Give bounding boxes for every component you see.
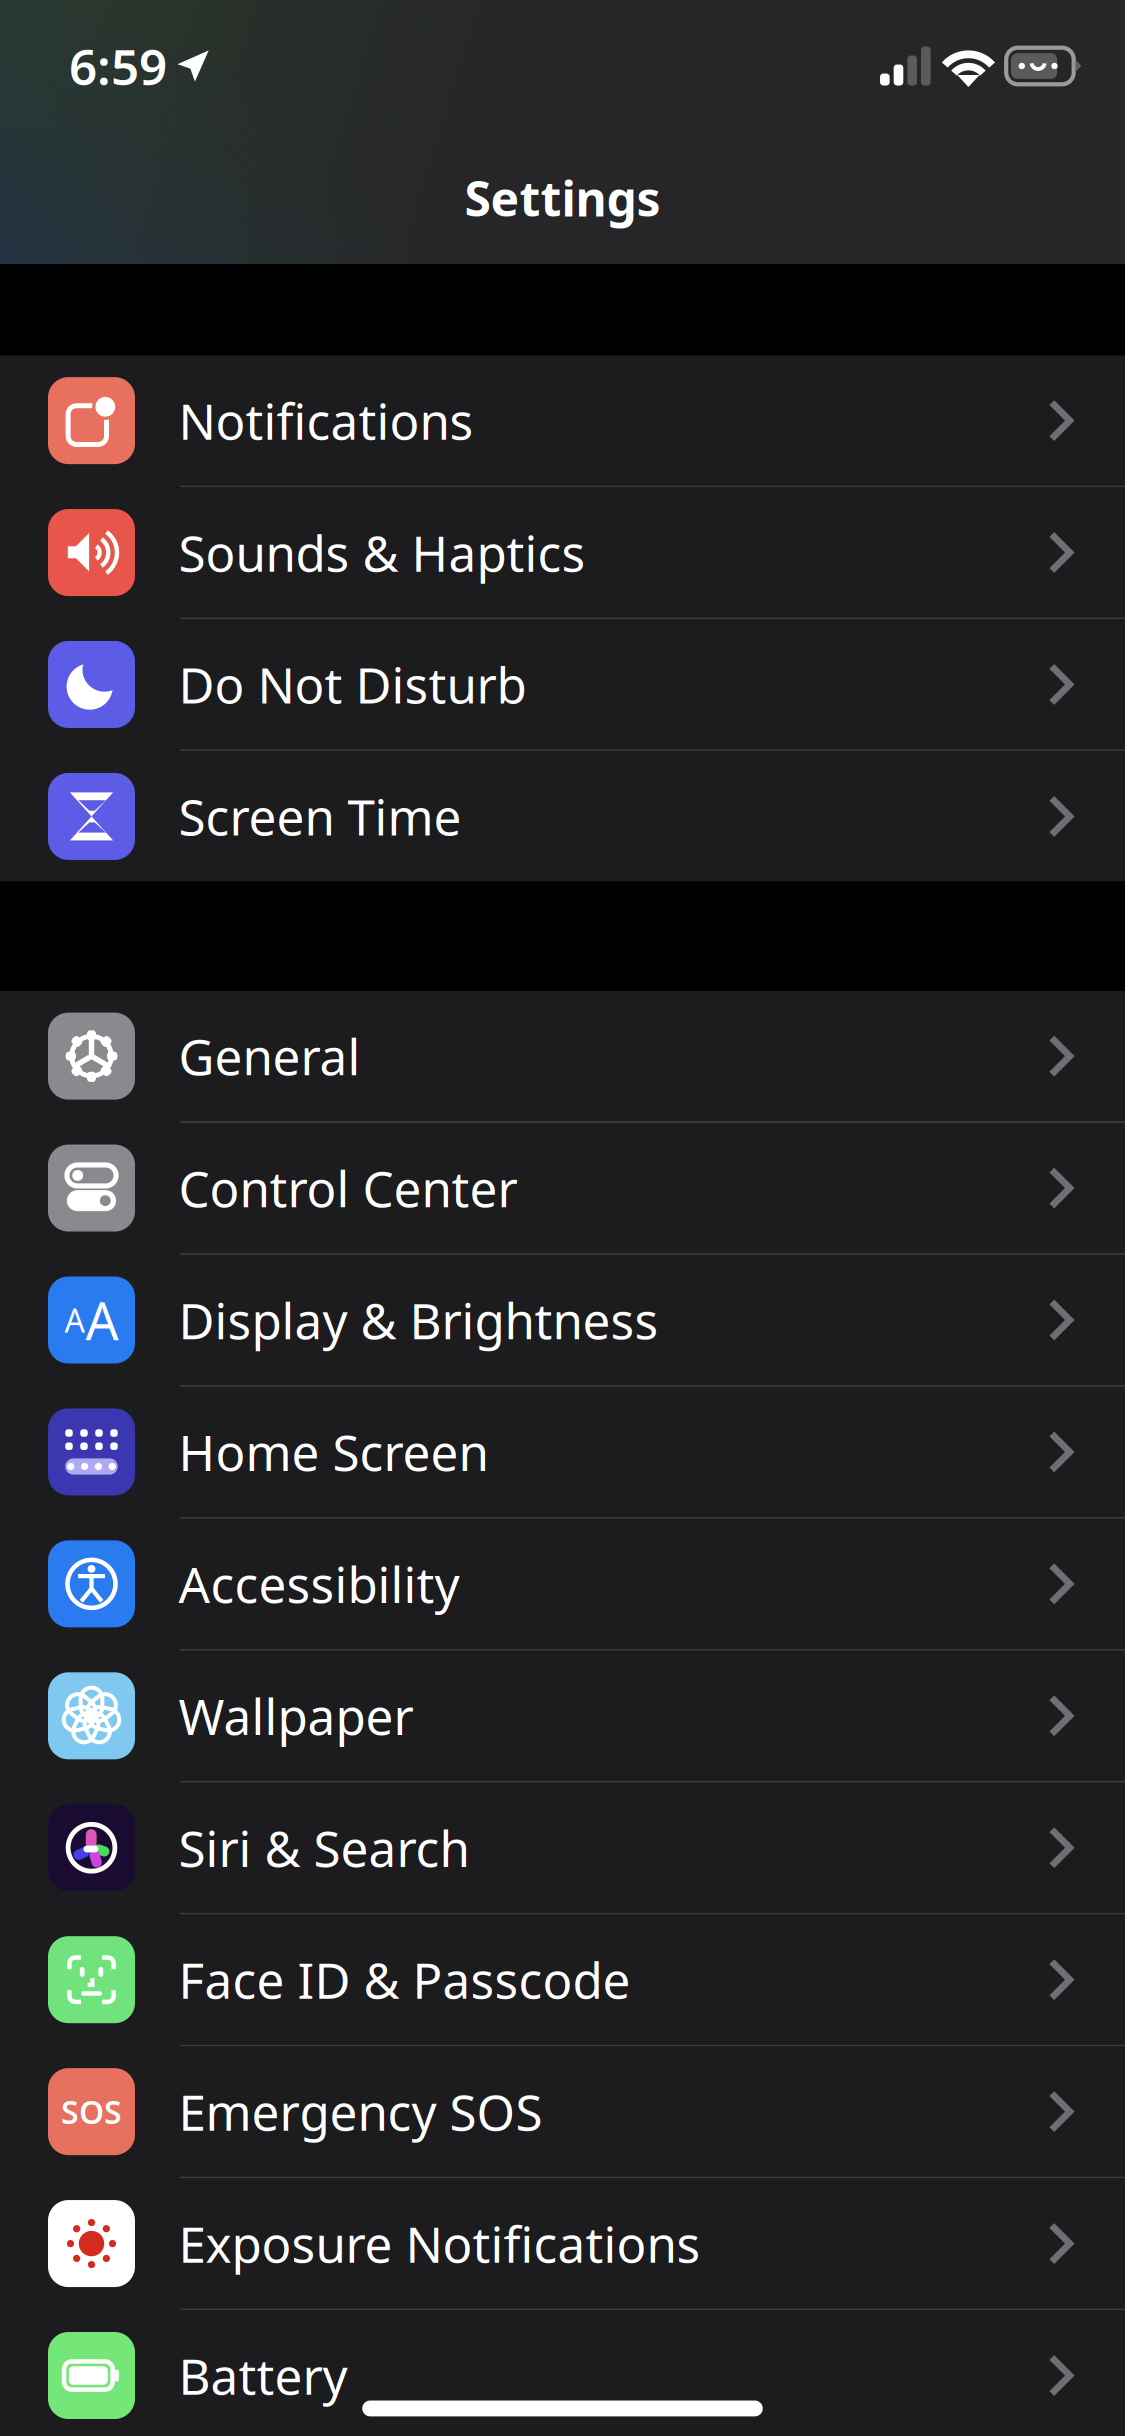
staticText: Screen Time [178, 784, 461, 849]
staticText: A [86, 1285, 119, 1355]
staticText: SOS [61, 2090, 122, 2133]
staticText: 6:59 [69, 33, 167, 99]
staticText: Settings [464, 166, 660, 230]
staticText: Accessibility [178, 1551, 459, 1617]
staticText: A [64, 1299, 84, 1341]
staticText: Siri & Search [178, 1815, 469, 1880]
button[interactable]: Home Screen [0, 1387, 1125, 1519]
button[interactable]: Exposure Notifications [0, 2178, 1125, 2310]
staticText: Wallpaper [178, 1683, 413, 1749]
staticText: Exposure Notifications [178, 2211, 700, 2276]
staticText: General [178, 1023, 360, 1089]
button[interactable]: Siri & Search [0, 1783, 1125, 1915]
button[interactable]: General [0, 991, 1125, 1123]
button[interactable]: A [0, 1255, 1125, 1387]
button[interactable]: Notifications [0, 355, 1125, 487]
staticText: Notifications [178, 388, 473, 453]
button[interactable]: Wallpaper [0, 1651, 1125, 1783]
staticText: Do Not Disturb [178, 652, 526, 717]
button[interactable]: Control Center [0, 1123, 1125, 1255]
staticText: Battery [178, 2343, 347, 2408]
button[interactable]: Face ID & Passcode [0, 1915, 1125, 2046]
button[interactable]: Accessibility [0, 1519, 1125, 1651]
button[interactable]: Screen Time [0, 751, 1125, 881]
staticText: Control Center [178, 1155, 517, 1221]
staticText: Emergency SOS [178, 2079, 542, 2144]
button[interactable]: Do Not Disturb [0, 619, 1125, 751]
button[interactable]: Battery [0, 2310, 1125, 2436]
staticText: Display & Brightness [178, 1287, 658, 1353]
staticText: Home Screen [178, 1419, 488, 1485]
staticText: Sounds & Haptics [178, 520, 585, 585]
button[interactable]: Sounds & Haptics [0, 487, 1125, 619]
button[interactable]: SOS [0, 2046, 1125, 2178]
staticText: Face ID & Passcode [178, 1947, 630, 2012]
